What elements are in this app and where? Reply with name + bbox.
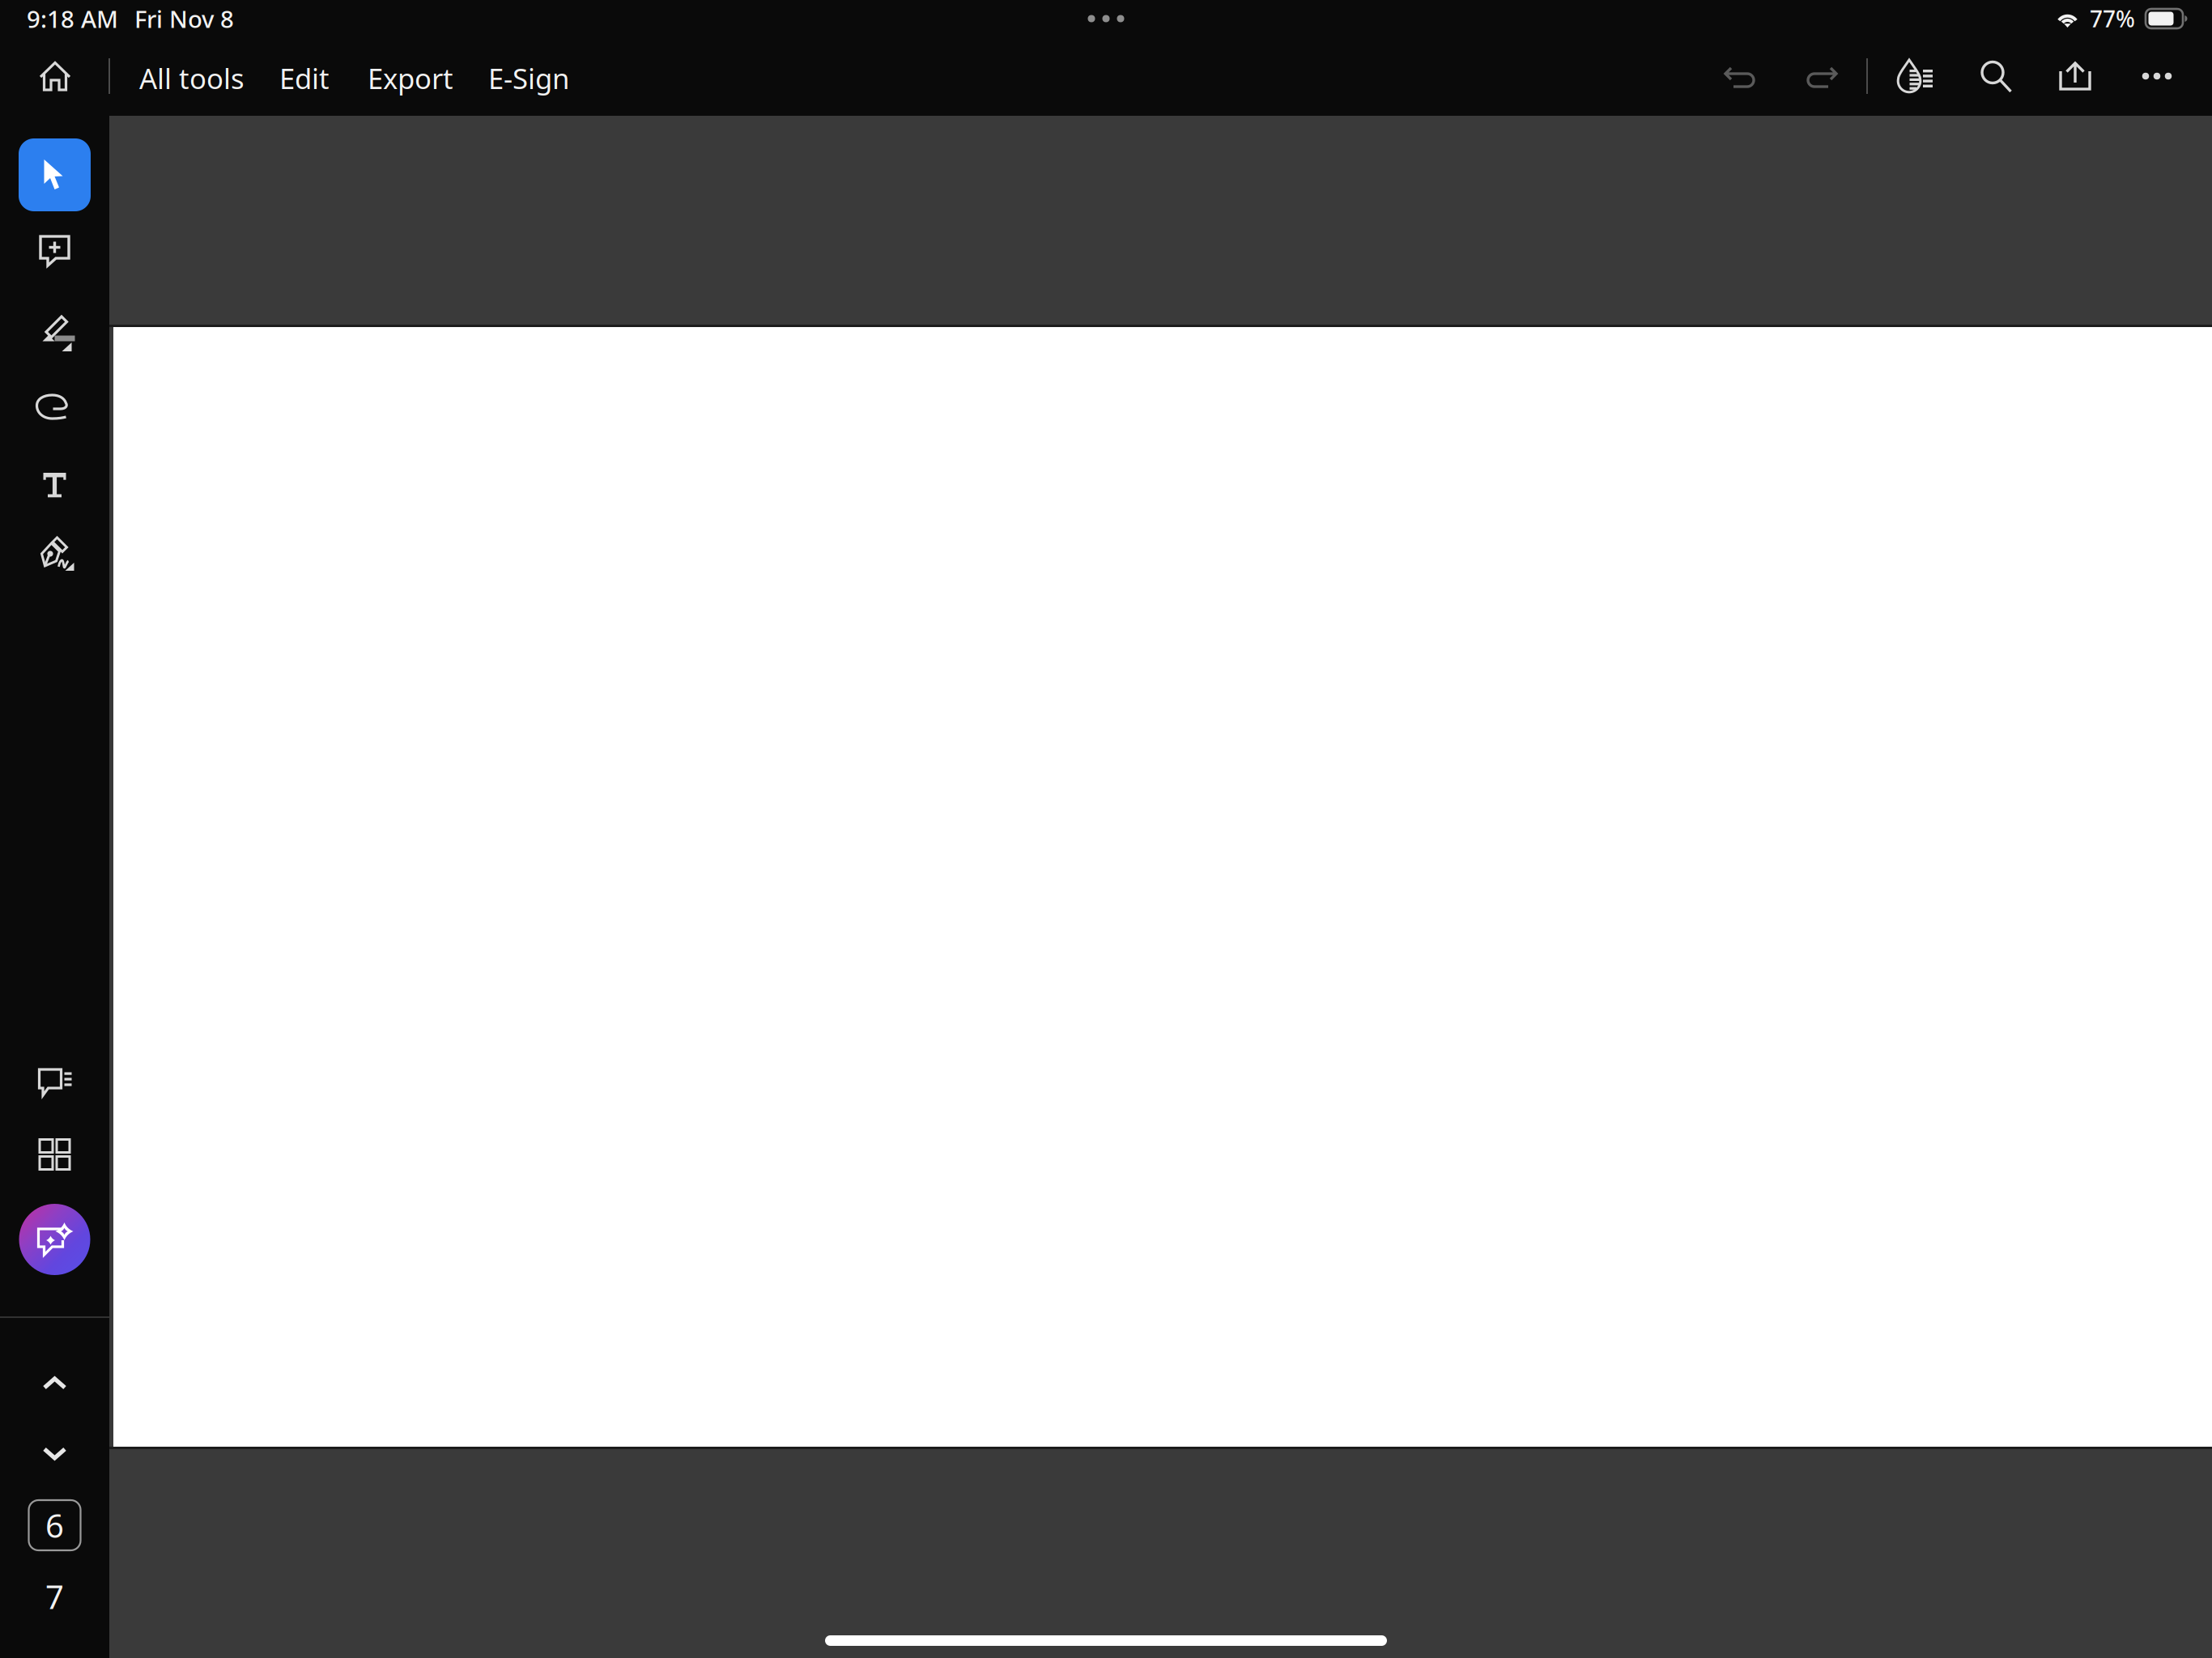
staticText: 9:18 AM — [27, 3, 118, 34]
staticText: 6 — [45, 1504, 64, 1547]
staticText: All tools — [139, 60, 245, 97]
staticText: Edit — [279, 60, 330, 97]
button[interactable]: Comments — [0, 1047, 109, 1118]
button[interactable]: More — [2124, 42, 2190, 110]
button[interactable]: Undo — [1706, 42, 1776, 110]
staticText: Export — [368, 60, 453, 97]
button[interactable]: Page 6 — [0, 1497, 109, 1554]
staticText: 7 — [45, 1575, 64, 1618]
button[interactable]: E-Sign — [468, 42, 589, 110]
button[interactable]: Next page — [0, 1431, 109, 1476]
button[interactable]: Highlight — [0, 298, 109, 369]
staticText: Fri Nov 8 — [134, 3, 234, 34]
button[interactable]: All tools — [123, 42, 261, 110]
button[interactable]: Add text — [0, 449, 109, 521]
button[interactable]: Redo — [1786, 42, 1856, 110]
button[interactable]: Export — [350, 42, 471, 110]
button[interactable]: Select — [0, 139, 109, 210]
staticText: 77% — [2090, 4, 2135, 34]
button[interactable]: Signature — [0, 517, 109, 588]
button[interactable]: Home — [20, 42, 90, 110]
button[interactable]: Share — [2042, 42, 2108, 110]
button[interactable]: Edit — [260, 42, 349, 110]
staticText: E-Sign — [488, 60, 569, 97]
button[interactable]: Add comment — [0, 215, 109, 287]
button[interactable]: Draw — [0, 372, 109, 444]
button[interactable]: Liquid Mode — [1882, 42, 1949, 110]
button[interactable]: AI Assistant — [0, 1199, 109, 1280]
button[interactable]: Page thumbnails — [0, 1119, 109, 1190]
button[interactable]: Previous page — [0, 1361, 109, 1406]
button[interactable]: Search — [1963, 42, 2030, 110]
